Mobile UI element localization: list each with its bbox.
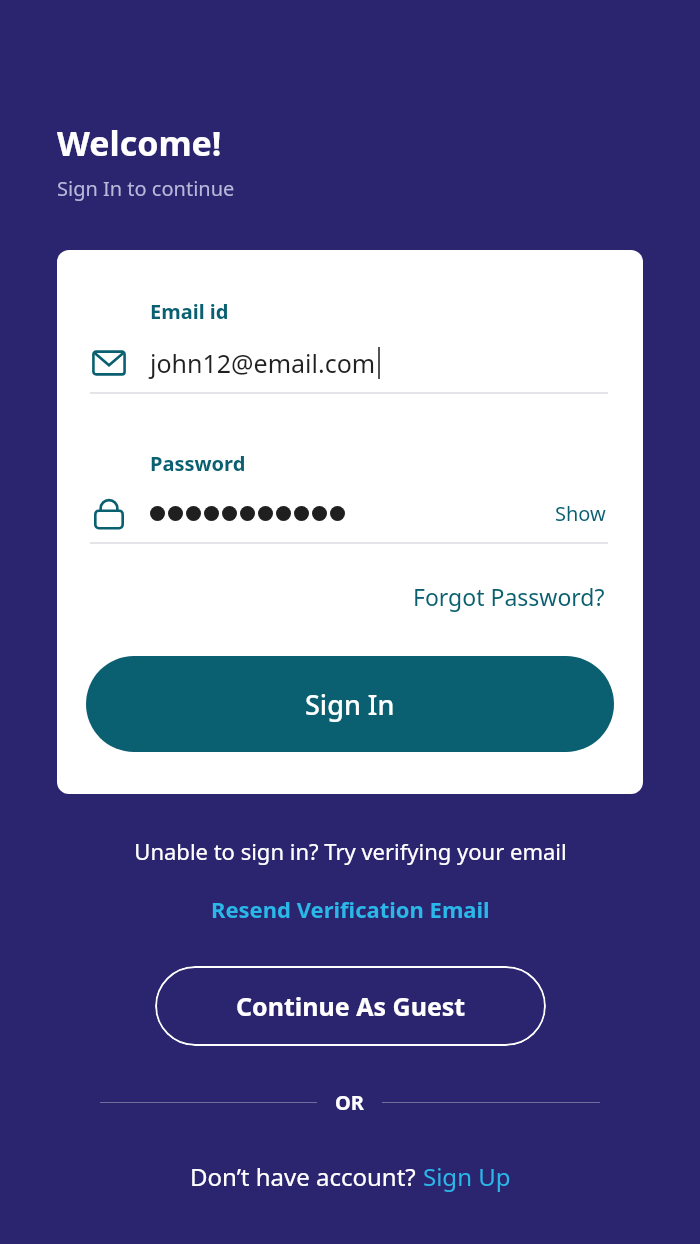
button[interactable]: Continue As Guest [155,966,546,1046]
staticText: Don’t have account? [190,1160,423,1193]
button[interactable]: Forgot Password? [407,575,611,618]
staticText: Forgot Password? [413,581,605,612]
staticText: Email id [150,298,229,325]
staticText: Show [555,500,606,527]
staticText: Password [150,450,246,477]
staticText: Unable to sign in? Try verifying your em… [134,836,567,866]
button[interactable]: Resend Verification Email [201,888,500,930]
staticText: Resend Verification Email [211,894,490,924]
staticText: Sign In to continue [57,175,235,202]
button[interactable]: Show [551,494,610,533]
staticText: john12@email.com [150,346,376,380]
other: Password [90,494,128,532]
staticText: Welcome! [57,120,222,166]
staticText: Continue As Guest [236,989,466,1023]
staticText: OR [335,1089,364,1116]
staticText: Sign In [305,686,395,723]
button[interactable]: john12@email.com [90,333,610,393]
staticText: Sign Up [423,1160,511,1193]
button[interactable]: Sign In [86,656,614,752]
button[interactable]: Sign Up [423,1160,511,1193]
